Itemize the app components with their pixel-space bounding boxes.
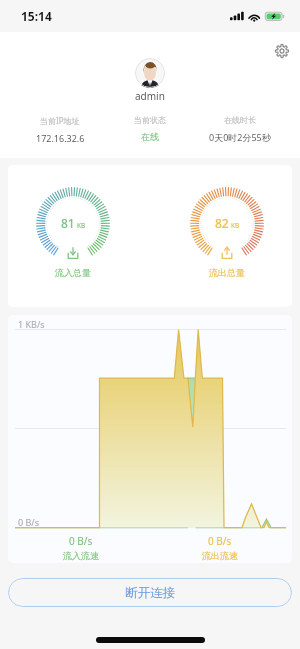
staticText: 172.16.32.6 [36,132,85,144]
staticText: 流入总量 [55,267,91,278]
staticText: 0 B/s [69,534,93,548]
staticText: 0 B/s [208,534,232,548]
staticText: 0天0时2分55秒 [209,131,271,143]
staticText: 0 B/s [18,516,39,528]
button[interactable]: Settings [268,37,295,64]
staticText: 当前IP地址 [40,115,80,126]
staticText: 在线时长 [224,115,256,125]
staticText: 81 [61,215,75,231]
staticText: KB [231,221,240,230]
staticText: 流出总量 [209,267,245,278]
staticText: 断开连接 [125,585,176,601]
staticText: 流入流速 [63,550,99,561]
staticText: 当前状态 [134,115,166,125]
staticText: 15:14 [21,8,52,24]
staticText: 流出流速 [202,550,238,561]
staticText: admin [135,89,165,103]
staticText: 在线 [141,131,159,142]
staticText: 82 [215,215,229,231]
staticText: KB [77,221,86,230]
button[interactable]: 断开连接 [8,578,292,607]
staticText: 1 KB/s [18,318,45,330]
